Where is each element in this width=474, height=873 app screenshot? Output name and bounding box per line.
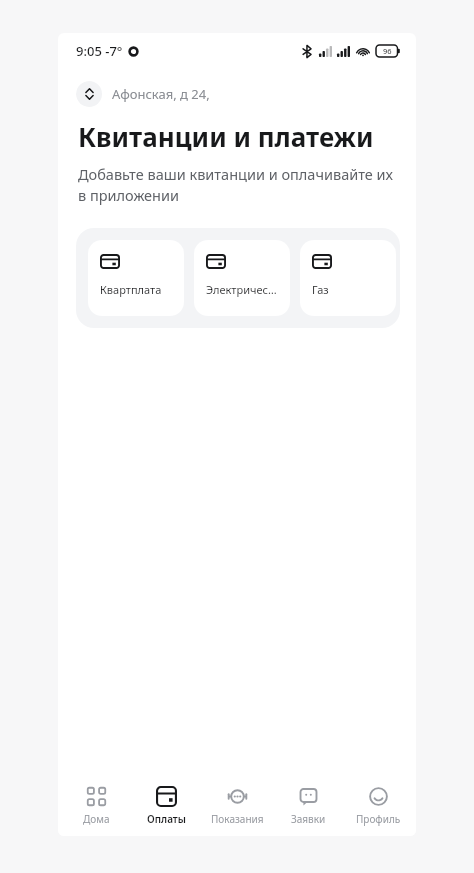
- button[interactable]: Квартплата: [88, 240, 184, 316]
- button[interactable]: Газ: [300, 240, 396, 316]
- button[interactable]: Афонская, д 24,: [76, 81, 218, 107]
- button[interactable]: Оплаты: [133, 783, 199, 829]
- staticText: Газ: [312, 282, 329, 297]
- button[interactable]: Дома: [63, 783, 129, 829]
- staticText: Дома: [83, 812, 110, 826]
- staticText: Квитанции и платежи: [78, 119, 374, 154]
- button[interactable]: Профиль: [345, 783, 411, 829]
- staticText: Заявки: [291, 812, 326, 826]
- staticText: Электричес…: [206, 282, 277, 297]
- staticText: 96: [383, 46, 392, 56]
- staticText: Показания: [211, 812, 264, 826]
- button[interactable]: Заявки: [275, 783, 341, 829]
- staticText: Добавьте ваши квитанции и оплачивайте их…: [78, 164, 393, 206]
- staticText: Квартплата: [100, 282, 162, 297]
- staticText: Профиль: [356, 812, 401, 826]
- staticText: 9:05 -7°: [76, 42, 123, 60]
- button[interactable]: Показания: [204, 783, 270, 829]
- staticText: Оплаты: [147, 812, 186, 826]
- staticText: Афонская, д 24,: [112, 85, 210, 103]
- button[interactable]: Электричес…: [194, 240, 290, 316]
